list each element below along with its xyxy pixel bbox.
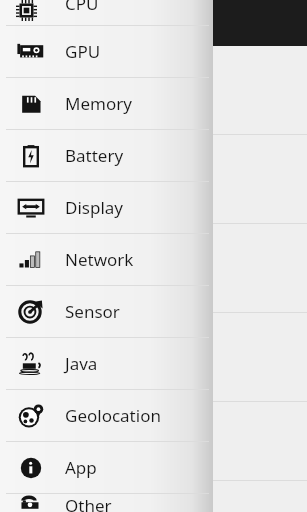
button[interactable]: Display Size — [0, 46, 307, 135]
staticText: Is Tablet — [16, 416, 91, 442]
button[interactable]: Usable Size — [0, 135, 307, 224]
staticText: Usable Size — [16, 149, 117, 175]
staticText: Java — [65, 352, 98, 375]
staticText: Battery — [65, 144, 124, 167]
staticText: Refresh Rate — [16, 327, 130, 353]
button[interactable]: Is Tablet — [0, 402, 307, 481]
other: Display — [16, 8, 46, 38]
staticText: Display — [65, 196, 123, 219]
button[interactable]: CPU — [0, 0, 213, 25]
button[interactable]: Other — [0, 494, 213, 512]
button[interactable]: Geolocation — [0, 390, 213, 441]
staticText: 800x480 px | — [16, 102, 100, 120]
staticText: GPU — [65, 40, 101, 63]
button[interactable]: App — [0, 442, 213, 493]
button[interactable]: Has Software Keys — [0, 481, 307, 512]
staticText: Display Size — [16, 60, 121, 86]
button[interactable]: Java — [0, 338, 213, 389]
button[interactable]: Sensor — [0, 286, 213, 337]
button[interactable]: Memory — [0, 78, 213, 129]
button[interactable]: GPU — [0, 26, 213, 77]
staticText: Screen Diagonal — [16, 238, 162, 264]
button[interactable]: Network — [0, 234, 213, 285]
button[interactable]: Battery — [0, 130, 213, 181]
staticText: App — [65, 456, 97, 479]
staticText: 10.87 cm | 4.2 — [16, 280, 104, 298]
staticText: Display — [52, 10, 117, 36]
staticText: Other — [65, 494, 112, 512]
button[interactable]: Screen Diagonal — [0, 224, 307, 313]
button[interactable]: Display — [0, 0, 307, 46]
staticText: No — [16, 454, 33, 470]
staticText: 60.382004 FP — [16, 369, 97, 387]
staticText: Memory — [65, 92, 132, 115]
staticText: Sensor — [65, 300, 120, 323]
staticText: CPU — [65, 0, 99, 15]
staticText: Network — [65, 248, 134, 271]
staticText: 800x480 px | — [16, 191, 100, 209]
staticText: Geolocation — [65, 404, 161, 427]
button[interactable]: Refresh Rate — [0, 313, 307, 402]
staticText: Has Software Keys — [16, 495, 180, 512]
button[interactable]: Display — [0, 182, 213, 233]
